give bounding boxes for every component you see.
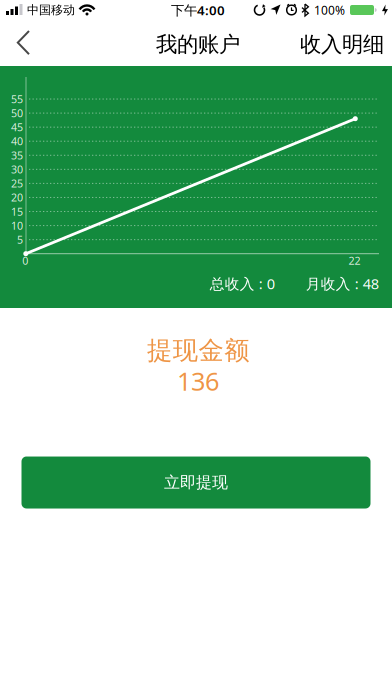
button[interactable]: 收入明细 (300, 22, 392, 64)
staticText: 0 (22, 253, 28, 268)
staticText: 5 (17, 233, 23, 247)
staticText: 100% (314, 2, 345, 18)
staticText: 136 (177, 364, 219, 398)
staticText: 提现金额 (147, 335, 249, 366)
staticText: 55 (11, 92, 23, 106)
staticText: 25 (11, 176, 23, 190)
staticText: 月收入 : 48 (306, 274, 379, 293)
staticText: 35 (11, 148, 23, 162)
staticText: 10 (11, 218, 23, 233)
staticText: 总收入 : 0 (210, 274, 275, 293)
staticText: 下午4:00 (171, 1, 225, 19)
button[interactable]: 立即提现 (21, 456, 370, 508)
staticText: 40 (11, 134, 23, 148)
staticText: 30 (11, 162, 23, 176)
staticText: 15 (11, 204, 23, 219)
staticText: 22 (349, 254, 361, 268)
staticText: 中国移动 (27, 3, 75, 17)
staticText: 20 (11, 190, 23, 205)
staticText: 立即提现 (164, 473, 228, 492)
staticText: 我的账户 (156, 31, 240, 58)
staticText: 收入明细 (300, 31, 384, 58)
staticText: 45 (11, 120, 23, 134)
button[interactable]: Back (0, 21, 30, 65)
staticText: 50 (11, 106, 23, 120)
